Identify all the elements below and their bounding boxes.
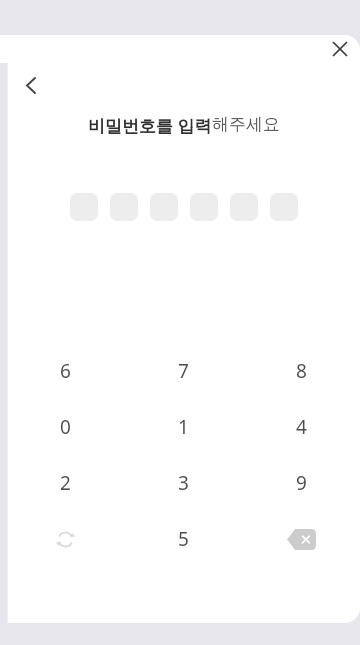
- staticText: 0: [60, 414, 71, 440]
- staticText: 2: [60, 470, 71, 496]
- button[interactable]: 3: [124, 455, 242, 511]
- staticText: 4: [296, 414, 307, 440]
- staticText: 5: [178, 526, 189, 552]
- button[interactable]: 0: [7, 399, 124, 455]
- button[interactable]: 5: [124, 511, 242, 567]
- staticText: 해주세요: [212, 114, 280, 135]
- button[interactable]: Shuffle keypad: [7, 511, 124, 567]
- button[interactable]: 8: [242, 343, 360, 399]
- button[interactable]: 2: [7, 455, 124, 511]
- button[interactable]: 4: [242, 399, 360, 455]
- staticText: 7: [178, 358, 189, 384]
- staticText: 3: [178, 470, 189, 496]
- staticText: 1: [178, 414, 189, 440]
- button[interactable]: 9: [242, 455, 360, 511]
- button[interactable]: 7: [124, 343, 242, 399]
- button[interactable]: Back: [14, 68, 48, 102]
- button[interactable]: 1: [124, 399, 242, 455]
- button[interactable]: 6: [7, 343, 124, 399]
- staticText: 9: [296, 470, 307, 496]
- staticText: 비밀번호를 입력: [88, 114, 212, 137]
- staticText: 8: [296, 358, 307, 384]
- staticText: 6: [60, 358, 71, 384]
- button[interactable]: Close: [324, 35, 356, 63]
- button[interactable]: Backspace: [242, 511, 360, 567]
